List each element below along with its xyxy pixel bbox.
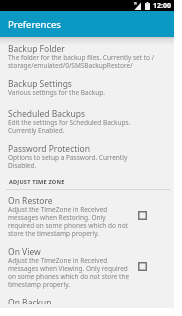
staticText: Backup Settings xyxy=(8,78,72,90)
staticText: On Backup xyxy=(8,297,52,304)
button[interactable]: On View xyxy=(0,244,174,295)
staticText: Various settings for the Backup. xyxy=(8,88,105,97)
staticText: Preferences xyxy=(8,18,61,31)
staticText: Password Protection xyxy=(8,143,90,155)
button[interactable]: Toggle On Restore xyxy=(134,207,150,223)
button[interactable]: Scheduled Backups xyxy=(0,106,174,141)
button[interactable]: Password Protection xyxy=(0,141,174,176)
staticText: Options to setup a Password. Currently D… xyxy=(8,153,155,170)
staticText: On View xyxy=(8,246,41,258)
button[interactable]: On Backup xyxy=(0,295,174,308)
staticText: Edit the settings for Scheduled Backups.… xyxy=(8,118,155,135)
button[interactable]: Toggle On View xyxy=(134,258,150,274)
staticText: Adjust the TimeZone in Received messages… xyxy=(8,205,130,238)
staticText: On Restore xyxy=(8,195,53,207)
staticText: Scheduled Backups xyxy=(8,108,86,120)
button[interactable]: Backup Settings xyxy=(0,76,174,106)
staticText: Backup Folder xyxy=(8,43,65,55)
staticText: Adjust the TimeZone in Received messages… xyxy=(8,256,130,289)
staticText: The folder for the backup files. Current… xyxy=(8,53,155,70)
button[interactable]: On Restore xyxy=(0,193,174,244)
button[interactable]: Backup Folder xyxy=(0,41,174,76)
staticText: ADJUST TIME ZONE xyxy=(9,178,65,186)
staticText: 12:00 xyxy=(153,1,171,11)
